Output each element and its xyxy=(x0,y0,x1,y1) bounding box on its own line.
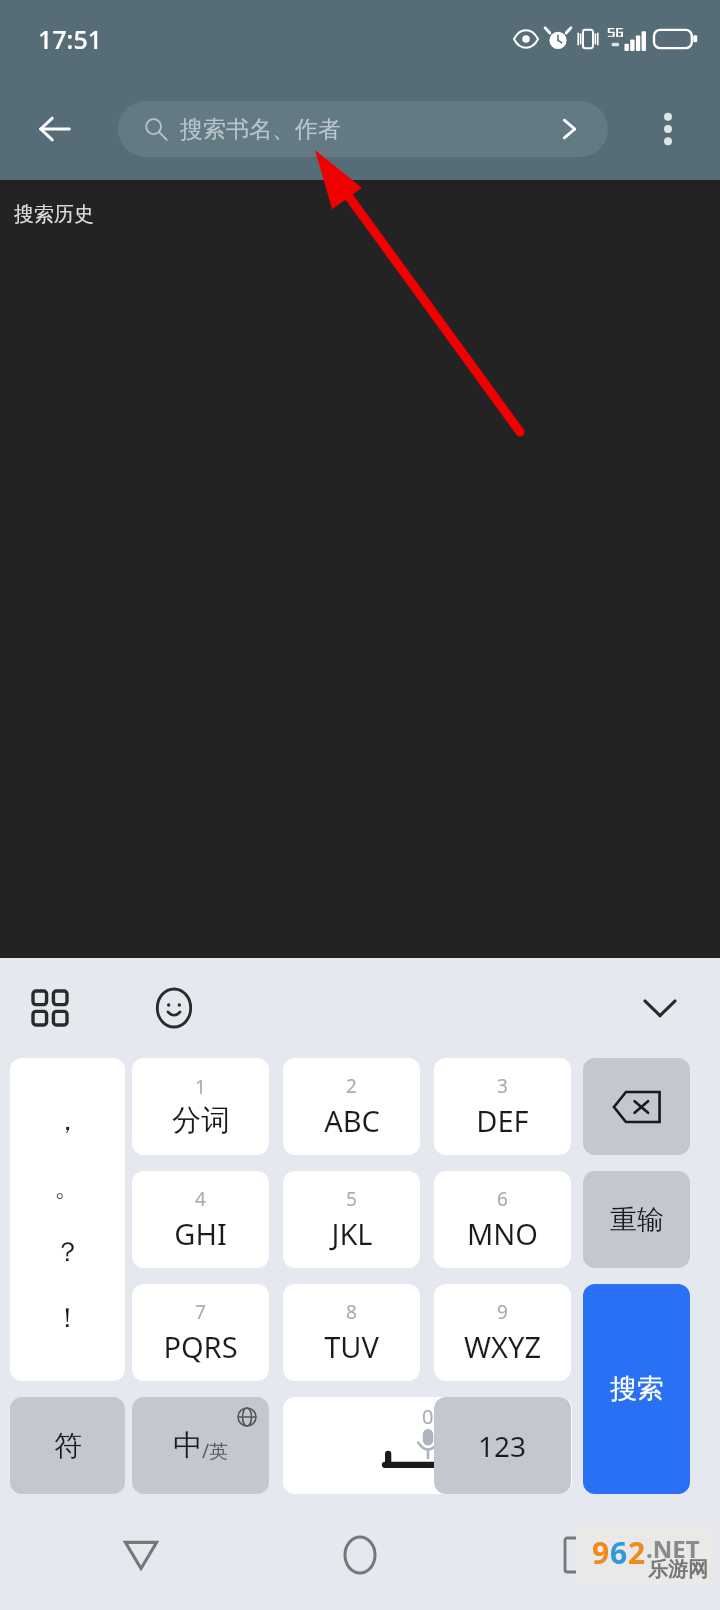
staticText: 17:51 xyxy=(38,22,103,56)
button[interactable]: 符 xyxy=(10,1397,125,1494)
staticText: ABC xyxy=(324,1101,380,1140)
button[interactable]: 4 xyxy=(132,1171,269,1268)
staticText: 1 xyxy=(195,1074,206,1100)
button[interactable]: Keyboard layouts xyxy=(22,980,78,1036)
staticText: JKL xyxy=(331,1214,373,1253)
staticText: 重输 xyxy=(610,1203,664,1237)
staticText: 分词 xyxy=(172,1102,230,1139)
button[interactable]: 重输 xyxy=(583,1171,690,1268)
staticText: 2 xyxy=(628,1532,646,1573)
button[interactable]: 中 xyxy=(132,1397,269,1494)
button[interactable]: 123 xyxy=(434,1397,571,1494)
staticText: 8 xyxy=(346,1299,357,1325)
staticText: 5 xyxy=(346,1186,357,1212)
staticText: ， xyxy=(54,1104,81,1138)
button[interactable]: Hide keyboard xyxy=(632,980,688,1036)
staticText: 搜索 xyxy=(610,1372,664,1406)
staticText: ！ xyxy=(54,1301,81,1335)
staticText: 6 xyxy=(610,1532,628,1573)
staticText: 3 xyxy=(497,1073,508,1099)
staticText: TUV xyxy=(324,1327,379,1366)
staticText: 搜索书名、作者 xyxy=(180,115,341,144)
button[interactable]: 5 xyxy=(283,1171,420,1268)
button[interactable]: 搜索书名、作者 xyxy=(118,101,608,157)
staticText: DEF xyxy=(476,1101,529,1140)
staticText: 7 xyxy=(195,1299,206,1325)
button[interactable]: 7 xyxy=(132,1284,269,1381)
button[interactable]: 搜索 xyxy=(583,1284,690,1494)
button[interactable]: 9 xyxy=(434,1284,571,1381)
staticText: 0 xyxy=(422,1403,434,1430)
button[interactable]: Back xyxy=(110,1524,172,1586)
button[interactable]: 1 xyxy=(132,1058,269,1155)
button[interactable]: Backspace xyxy=(583,1058,690,1155)
staticText: MNO xyxy=(467,1214,538,1253)
staticText: /英 xyxy=(202,1438,229,1464)
button[interactable]: 2 xyxy=(283,1058,420,1155)
button[interactable]: Recent apps xyxy=(548,1524,610,1586)
button[interactable]: Home xyxy=(329,1524,391,1586)
staticText: 乐游网 xyxy=(648,1557,708,1582)
staticText: 123 xyxy=(478,1427,527,1465)
staticText: .NET xyxy=(646,1532,700,1565)
staticText: 符 xyxy=(54,1428,82,1463)
staticText: 2 xyxy=(346,1073,357,1099)
staticText: GHI xyxy=(174,1214,227,1253)
button[interactable]: 6 xyxy=(434,1171,571,1268)
staticText: 9 xyxy=(592,1532,610,1573)
staticText: 搜索历史 xyxy=(14,202,94,227)
staticText: 。 xyxy=(54,1170,81,1204)
button[interactable]: 8 xyxy=(283,1284,420,1381)
staticText: PQRS xyxy=(163,1327,238,1366)
button[interactable]: More options xyxy=(640,101,696,157)
staticText: 9 xyxy=(497,1299,508,1325)
button[interactable]: Space xyxy=(283,1397,572,1494)
staticText: WXYZ xyxy=(464,1327,541,1366)
button[interactable]: Back xyxy=(24,98,86,160)
button[interactable]: 3 xyxy=(434,1058,571,1155)
staticText: 6 xyxy=(497,1186,508,1212)
staticText: 中 xyxy=(173,1427,202,1464)
staticText: ？ xyxy=(54,1235,81,1269)
staticText: 4 xyxy=(195,1186,206,1212)
button[interactable]: Emoji xyxy=(146,980,202,1036)
button[interactable]: ， xyxy=(10,1058,125,1381)
